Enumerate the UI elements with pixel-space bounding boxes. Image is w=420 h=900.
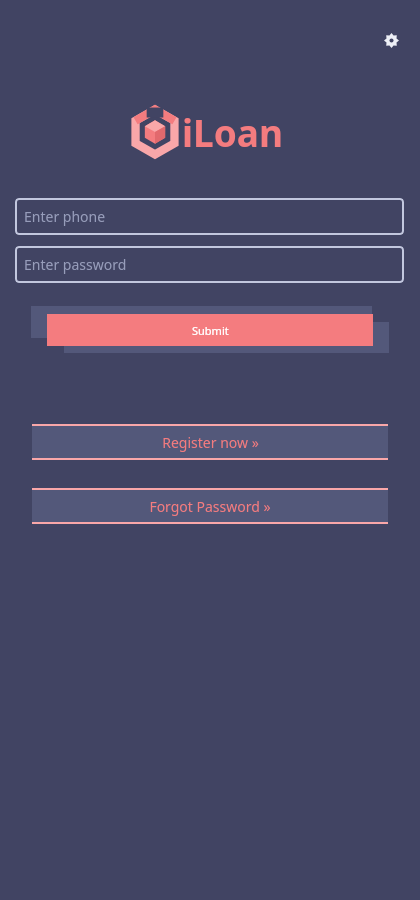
staticText: iLoan [182,107,284,157]
staticText: Enter phone [24,207,106,226]
button[interactable]: Register now » [32,424,388,460]
button[interactable]: Submit [47,314,373,346]
button[interactable]: Enter password [15,246,404,283]
button[interactable]: Forgot Password » [32,488,388,524]
staticText: Forgot Password » [149,497,271,516]
button[interactable]: Enter phone [15,198,404,235]
staticText: Enter password [24,255,127,274]
staticText: Submit [192,323,229,338]
button[interactable]: Settings [377,26,405,54]
staticText: Register now » [162,433,259,452]
